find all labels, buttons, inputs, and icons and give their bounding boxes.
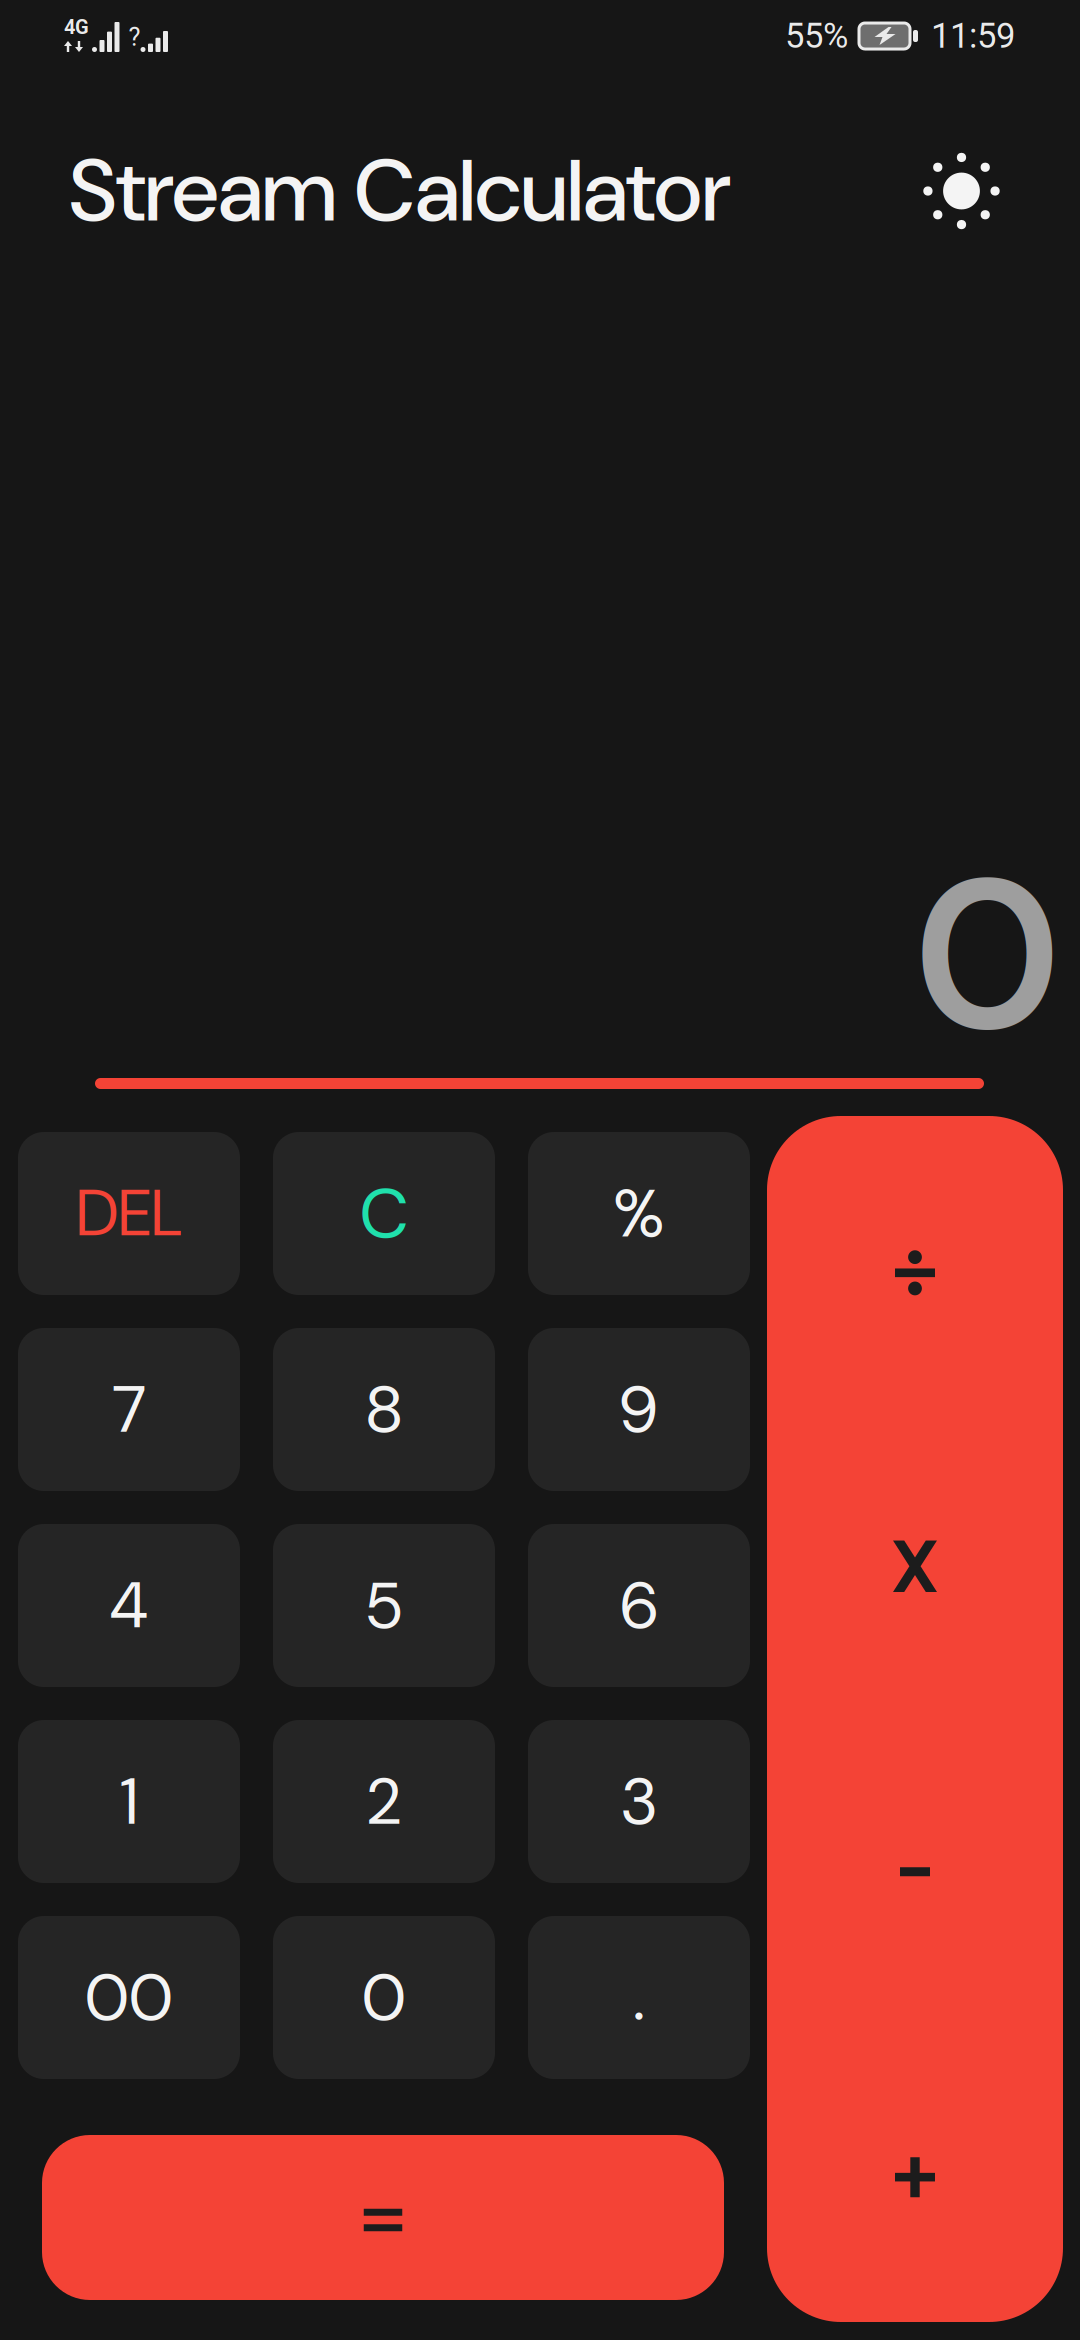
staticText: 0: [915, 818, 1060, 1092]
staticText: 4: [109, 1563, 148, 1648]
staticText: 4G: [64, 16, 89, 39]
staticText: C: [360, 1168, 408, 1259]
staticText: 6: [620, 1563, 658, 1648]
button[interactable]: 1: [18, 1720, 240, 1883]
staticText: .: [633, 1955, 645, 2040]
button[interactable]: 7: [18, 1328, 240, 1491]
button[interactable]: 00: [18, 1916, 240, 2079]
staticText: 7: [112, 1367, 146, 1452]
button[interactable]: 2: [273, 1720, 495, 1883]
button[interactable]: .: [528, 1916, 750, 2079]
staticText: Stream Calculator: [69, 135, 730, 247]
staticText: 3: [621, 1759, 657, 1844]
button[interactable]: Minus: [767, 1719, 1063, 2020]
button[interactable]: 5: [273, 1524, 495, 1687]
button[interactable]: 9: [528, 1328, 750, 1491]
staticText: 8: [366, 1367, 402, 1452]
staticText: ?: [128, 22, 140, 52]
staticText: 0: [362, 1955, 406, 2040]
staticText: 1: [120, 1759, 137, 1844]
staticText: 11:59: [931, 16, 1015, 56]
button[interactable]: Plus: [767, 2020, 1063, 2322]
button[interactable]: Multiply: [767, 1417, 1063, 1719]
button[interactable]: 3: [528, 1720, 750, 1883]
staticText: DEL: [76, 1172, 181, 1255]
staticText: 9: [620, 1367, 658, 1452]
button[interactable]: 4: [18, 1524, 240, 1687]
staticText: 5: [366, 1563, 401, 1648]
button[interactable]: 8: [273, 1328, 495, 1491]
button[interactable]: Equals: [42, 2135, 724, 2300]
button[interactable]: DEL: [18, 1132, 240, 1295]
button[interactable]: C: [273, 1132, 495, 1295]
staticText: 2: [367, 1759, 400, 1844]
button[interactable]: %: [528, 1132, 750, 1295]
button[interactable]: Brightness: [923, 129, 1000, 253]
staticText: %: [613, 1170, 665, 1257]
staticText: 00: [85, 1955, 173, 2040]
staticText: 55%: [785, 16, 848, 56]
button[interactable]: Divide: [767, 1116, 1063, 1417]
button[interactable]: 6: [528, 1524, 750, 1687]
button[interactable]: 0: [273, 1916, 495, 2079]
